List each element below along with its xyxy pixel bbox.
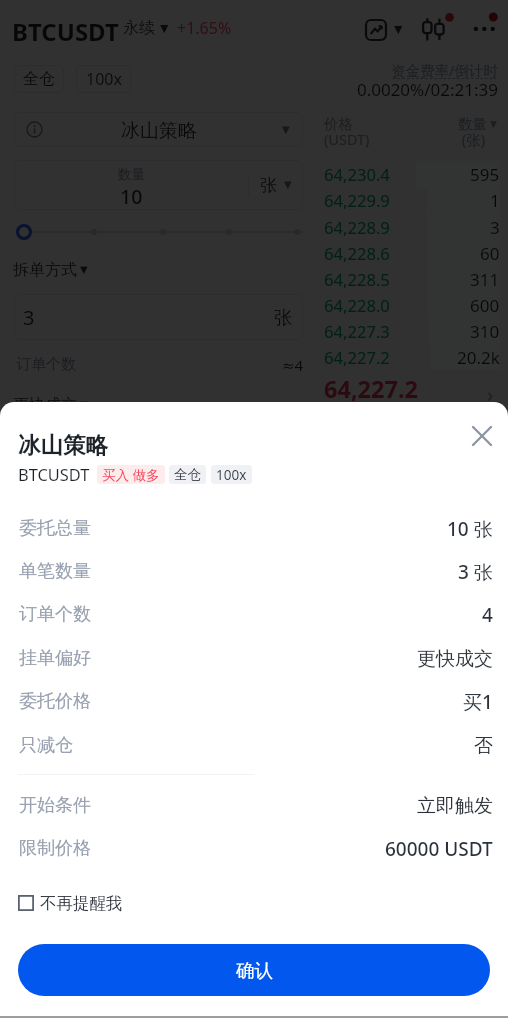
staticText: 订单个数 [19,603,91,626]
staticText: 3 [490,216,500,239]
staticText: 冰山策略 [18,431,108,459]
button[interactable]: 拆单方式 [13,260,88,279]
staticText: 3 [23,304,35,331]
staticText: 张 [274,306,293,329]
staticText: 10 [120,183,143,210]
staticText: 委托价格 [19,690,91,713]
staticText: 数量 [118,166,145,183]
staticText: ▼ [80,399,88,411]
staticText: 64,228.9 [324,216,390,239]
staticText: (USDT) [324,129,370,149]
button[interactable]: 单笔数量 [0,550,508,593]
staticText: 资金费率/倒计时 [318,60,498,80]
staticText: 600 [470,294,500,317]
button[interactable]: Chart [360,14,392,46]
staticText: 委托总量 [19,517,91,540]
staticText: 立即触发 [417,794,493,818]
staticText: 订单个数 [16,355,76,372]
staticText: 更快成交 [417,647,493,671]
staticText: 拆单方式 [13,260,77,279]
button[interactable]: 100x [76,65,131,93]
staticText: 买入 做多 [102,466,160,484]
staticText: 10 张 [447,516,493,542]
button[interactable]: Candles [415,10,457,52]
staticText: 单笔数量 [19,560,91,583]
staticText: 更快成交 [13,395,77,414]
button[interactable]: 开始条件 [0,784,508,827]
staticText: BTCUSDT [18,463,90,485]
staticText: 60000 USDT [385,836,493,862]
button[interactable]: 限制价格 [0,827,508,870]
staticText: 永续 [123,18,155,38]
staticText: 60 [480,242,500,265]
staticText: 限制价格 [19,837,91,860]
staticText: 全仓 [174,466,201,483]
staticText: 64,227.2 [324,346,390,369]
staticText: › [487,381,494,408]
button[interactable]: 数量 [14,160,303,210]
button[interactable]: 不再提醒我 [18,887,123,919]
staticText: 3 张 [458,559,493,585]
staticText: 310 [470,320,500,343]
staticText: 64,227.2 [324,373,418,405]
staticText: 64,230.4 [324,163,390,186]
button[interactable]: Close [460,414,504,458]
staticText: 1 [490,189,500,212]
button[interactable]: 订单个数 [0,593,508,636]
button[interactable]: 委托总量 [0,507,508,550]
staticText: 挂单偏好 [19,647,91,670]
staticText: BTCUSDT [12,15,119,41]
staticText: 数量 [458,115,487,133]
staticText: 595 [470,163,500,186]
staticText: ▼ [284,179,292,191]
button[interactable]: 只减仓 [0,724,508,767]
staticText: ▼ [394,23,403,36]
staticText: 64,228.6 [324,242,390,265]
staticText: ▼ [282,124,290,136]
staticText: 20.2k [457,346,500,369]
button[interactable]: 更快成交 [13,395,88,414]
staticText: 311 [470,268,500,291]
staticText: 只减仓 [19,734,73,757]
staticText: 价格 [324,115,353,133]
staticText: ▼ [490,119,497,129]
staticText: 冰山策略 [121,119,197,143]
staticText: 64,229.9 [324,189,390,212]
staticText: 张 [260,175,277,196]
button[interactable]: 挂单偏好 [0,637,508,680]
button[interactable]: 确认 [18,944,490,996]
staticText: 64,228.0 [324,294,390,317]
staticText: 不再提醒我 [40,893,123,914]
staticText: (张) [380,129,485,149]
staticText: 100x [216,466,247,484]
button[interactable]: 冰山策略 [14,112,303,147]
staticText: 0.0020%/02:21:39 [318,78,498,101]
staticText: 64,227.3 [324,320,390,343]
staticText: ▼ [160,22,169,35]
staticText: 100x [86,68,122,90]
staticText: 全仓 [23,69,55,89]
staticText: 开始条件 [19,794,91,817]
staticText: +1.65% [177,17,232,39]
button[interactable]: 委托价格 [0,680,508,723]
staticText: 4 [482,602,493,628]
staticText: 64,228.5 [324,268,390,291]
button[interactable]: More options [466,8,508,50]
staticText: 否 [474,734,493,758]
staticText: ≈4 [282,355,304,372]
staticText: 买1 [463,689,493,715]
staticText: ▼ [80,264,88,276]
staticText: 确认 [236,959,273,982]
button[interactable]: 全仓 [14,65,64,93]
